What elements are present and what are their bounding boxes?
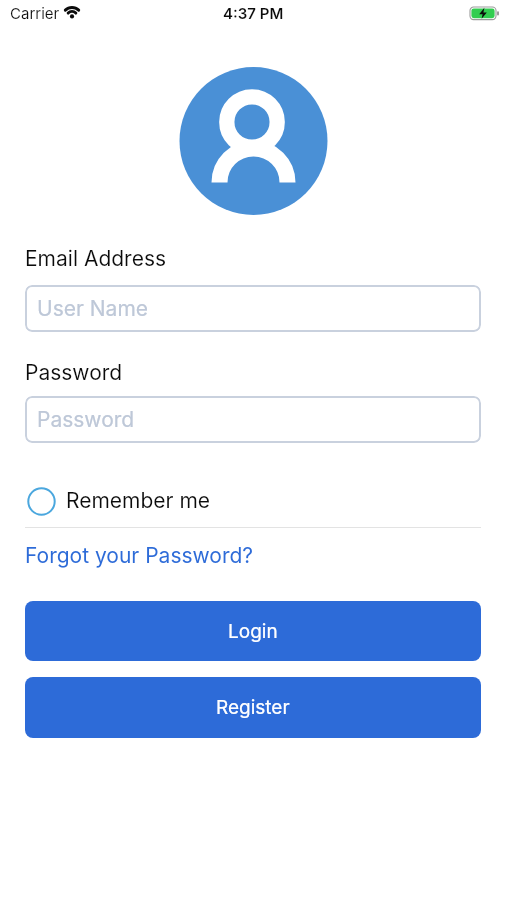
staticText: Carrier: [10, 4, 60, 22]
staticText: Register: [216, 696, 290, 719]
button[interactable]: Forgot your Password?: [25, 543, 254, 568]
button[interactable]: Register: [25, 677, 481, 738]
button[interactable]: Password: [25, 396, 481, 443]
button[interactable]: User Name: [25, 285, 481, 332]
staticText: Login: [228, 620, 278, 643]
staticText: Password: [37, 407, 135, 432]
staticText: Password: [25, 360, 123, 385]
staticText: User Name: [37, 296, 149, 321]
staticText: Remember me: [66, 488, 211, 513]
button[interactable]: Login: [25, 601, 481, 661]
button[interactable]: Remember me: [25, 483, 245, 520]
staticText: Forgot your Password?: [25, 543, 254, 568]
staticText: Email Address: [25, 246, 167, 271]
staticText: 4:37 PM: [223, 4, 284, 22]
